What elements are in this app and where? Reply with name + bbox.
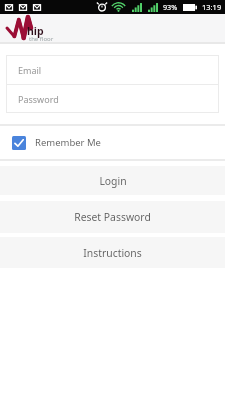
other: Message notification	[19, 4, 27, 11]
button[interactable]: Remember Me	[0, 126, 225, 159]
button[interactable]: Instructions	[0, 237, 225, 268]
staticText: Password	[18, 93, 59, 105]
staticText: 93%	[163, 2, 178, 12]
staticText: Login	[99, 174, 127, 188]
staticText: Instructions	[83, 246, 142, 260]
staticText: hip	[27, 24, 44, 38]
button[interactable]: Reset Password	[0, 201, 225, 233]
button[interactable]: Password	[6, 84, 219, 113]
staticText: the floor	[29, 35, 54, 43]
staticText: Email	[18, 64, 42, 76]
button[interactable]: Email	[6, 55, 219, 84]
staticText: Remember Me	[35, 136, 101, 149]
other: Message notification	[33, 4, 41, 11]
staticText: 13:19	[202, 2, 222, 12]
other: Message notification	[5, 4, 13, 11]
button[interactable]: Login	[0, 166, 225, 195]
staticText: Reset Password	[74, 210, 151, 224]
